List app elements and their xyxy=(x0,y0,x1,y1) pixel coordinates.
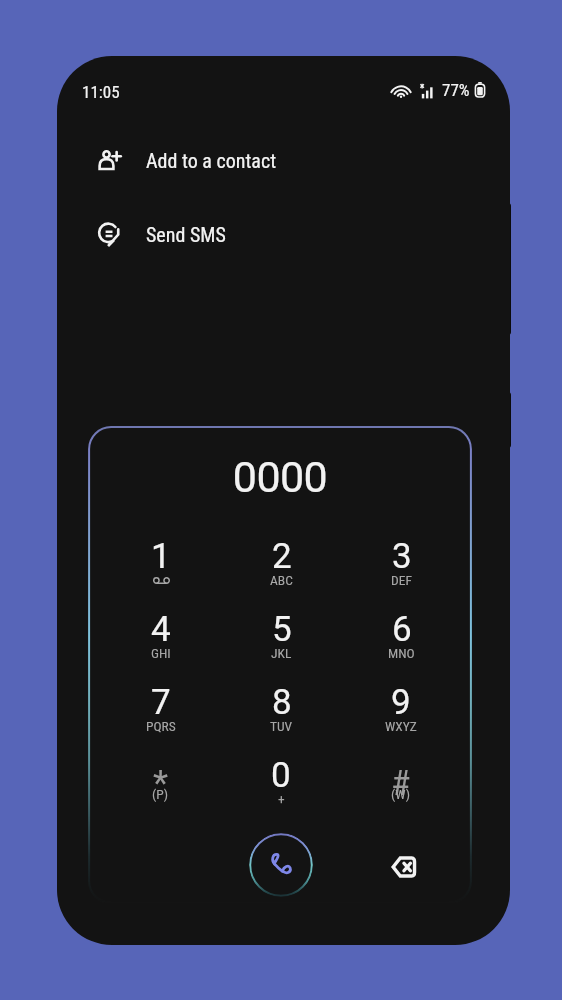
staticText: 3 xyxy=(392,536,412,577)
staticText: 4 xyxy=(151,609,171,650)
button[interactable]: 6 xyxy=(341,609,461,671)
button[interactable]: 7 xyxy=(100,682,221,744)
staticText: * xyxy=(153,763,169,804)
button[interactable]: Add to a contact xyxy=(57,138,510,182)
staticText: TUV xyxy=(270,718,293,734)
staticText: ABC xyxy=(270,572,293,588)
staticText: 5 xyxy=(272,609,292,650)
button[interactable]: Call xyxy=(249,833,313,897)
staticText: 0 xyxy=(271,755,291,796)
staticText: 9 xyxy=(391,682,411,723)
staticText: PQRS xyxy=(146,718,176,734)
staticText: Send SMS xyxy=(146,223,226,246)
staticText: 6 xyxy=(392,609,412,650)
button[interactable]: # xyxy=(341,755,461,817)
staticText: 8 xyxy=(272,682,292,723)
staticText: (P) xyxy=(152,786,169,802)
staticText: 11:05 xyxy=(82,82,120,102)
staticText: + xyxy=(278,791,285,807)
staticText: 7 xyxy=(151,682,171,723)
staticText: 0000 xyxy=(88,452,472,502)
button[interactable]: * xyxy=(100,755,221,817)
staticText: WXYZ xyxy=(385,718,417,734)
staticText: 2 xyxy=(272,536,292,577)
button[interactable]: 1 xyxy=(100,536,221,598)
button[interactable]: 0 xyxy=(221,755,341,817)
button[interactable]: 3 xyxy=(341,536,461,598)
staticText: 77% xyxy=(442,80,470,100)
button[interactable]: 5 xyxy=(221,609,341,671)
staticText: 1 xyxy=(151,536,171,577)
staticText: MNO xyxy=(388,645,415,661)
staticText: JKL xyxy=(271,645,292,661)
button[interactable]: Backspace xyxy=(385,849,421,885)
button[interactable]: 8 xyxy=(221,682,341,744)
button[interactable]: 9 xyxy=(341,682,461,744)
staticText: (W) xyxy=(391,786,411,802)
staticText: # xyxy=(391,763,411,804)
button[interactable]: 4 xyxy=(100,609,221,671)
staticText: GHI xyxy=(151,645,171,661)
button[interactable]: 2 xyxy=(221,536,341,598)
button[interactable]: Send SMS xyxy=(57,212,510,256)
staticText: Add to a contact xyxy=(146,149,277,172)
staticText: DEF xyxy=(391,572,412,588)
